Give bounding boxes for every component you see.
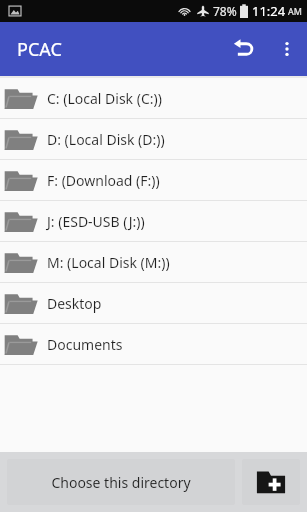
staticText: C: (Local Disk (C:)) — [47, 89, 162, 108]
button[interactable]: C: (Local Disk (C:)) — [0, 78, 307, 118]
button[interactable]: Desktop — [0, 283, 307, 323]
button[interactable]: D: (Local Disk (D:)) — [0, 119, 307, 159]
button[interactable]: More options — [267, 29, 307, 69]
button[interactable]: Create new folder — [242, 459, 300, 505]
staticText: 78% — [213, 3, 237, 19]
staticText: AM — [288, 5, 302, 17]
button[interactable]: M: (Local Disk (M:)) — [0, 242, 307, 282]
staticText: PCAC — [17, 37, 62, 62]
staticText: D: (Local Disk (D:)) — [47, 130, 165, 149]
button[interactable]: F: (Download (F:)) — [0, 160, 307, 200]
button[interactable]: Choose this directory — [7, 459, 235, 505]
button[interactable]: Documents — [0, 324, 307, 364]
staticText: 11:24 — [252, 2, 286, 20]
staticText: M: (Local Disk (M:)) — [47, 253, 170, 272]
staticText: Documents — [47, 335, 123, 354]
button[interactable]: J: (ESD-USB (J:)) — [0, 201, 307, 241]
staticText: Choose this directory — [51, 473, 191, 492]
staticText: J: (ESD-USB (J:)) — [47, 212, 145, 231]
button[interactable]: Undo — [221, 26, 267, 72]
staticText: Desktop — [47, 294, 102, 313]
staticText: F: (Download (F:)) — [47, 171, 160, 190]
